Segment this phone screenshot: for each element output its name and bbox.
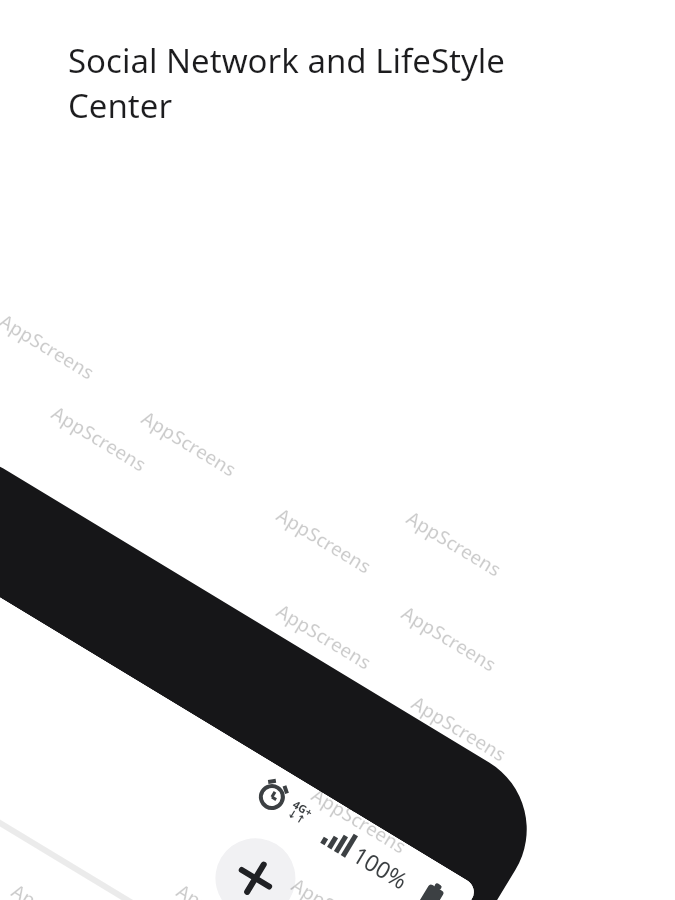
button[interactable] [0, 570, 120, 630]
button[interactable] [170, 650, 310, 710]
button[interactable]: Search [340, 632, 402, 694]
button[interactable]: Add [280, 600, 342, 662]
